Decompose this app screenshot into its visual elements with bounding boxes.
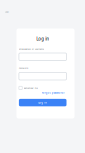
staticText: Remember me [24,87,38,89]
staticText: Log in [36,36,49,42]
button[interactable]: Email address or username [19,53,66,60]
button[interactable]: Forgot password? [19,91,65,94]
staticText: Password [19,67,28,69]
staticText: Forgot password? [42,91,65,95]
button[interactable]: Password [19,72,66,80]
staticText: Log in [38,101,47,104]
staticText: Logo [5,10,9,13]
button[interactable]: Remember me [19,86,66,90]
button[interactable]: Log in [19,99,66,106]
staticText: Email address or username [19,48,44,50]
button[interactable]: Logo [5,9,16,14]
